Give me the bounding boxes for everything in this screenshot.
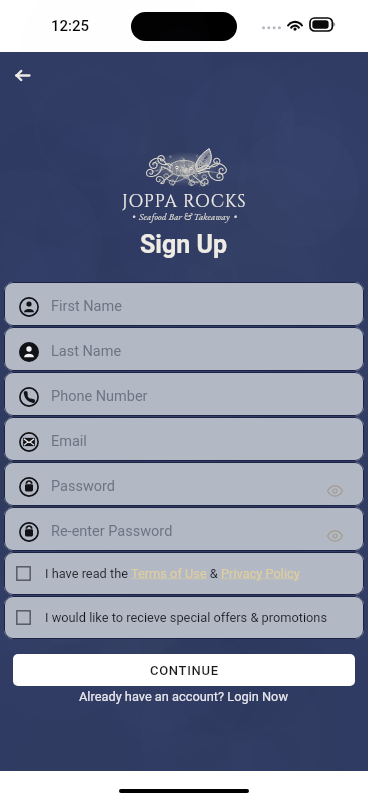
staticText: Sign Up <box>140 230 228 259</box>
staticText: • Seafood Bar & Takeaway • <box>132 210 237 222</box>
button[interactable]: Back <box>4 57 40 93</box>
staticText: 12:25 <box>51 17 90 35</box>
button[interactable]: Email <box>4 417 364 461</box>
button[interactable]: Phone Number <box>4 372 364 416</box>
staticText: Email <box>51 433 87 450</box>
staticText: Phone Number <box>51 388 148 405</box>
staticText: Password <box>51 478 116 495</box>
staticText: I would like to recieve special offers &… <box>45 610 327 625</box>
button[interactable]: Password <box>4 462 364 506</box>
staticText: First Name <box>51 298 122 315</box>
staticText: CONTINUE <box>150 663 219 678</box>
staticText: JOPPA ROCKS <box>122 190 247 214</box>
button[interactable]: First Name <box>4 282 364 326</box>
button[interactable]: Already have an account? Login Now <box>79 689 289 704</box>
staticText: Already have an account? Login Now <box>79 689 289 704</box>
staticText: Re-enter Password <box>51 523 173 540</box>
button[interactable]: I would like to recieve special offers &… <box>4 596 364 639</box>
button[interactable]: Last Name <box>4 327 364 371</box>
staticText: I have read the Terms of Use & Privacy P… <box>45 566 300 581</box>
staticText: Last Name <box>51 343 122 360</box>
button[interactable]: Re-enter Password <box>4 507 364 551</box>
button[interactable]: CONTINUE <box>13 654 355 686</box>
button[interactable]: I have read the Terms of Use & Privacy P… <box>4 552 364 595</box>
